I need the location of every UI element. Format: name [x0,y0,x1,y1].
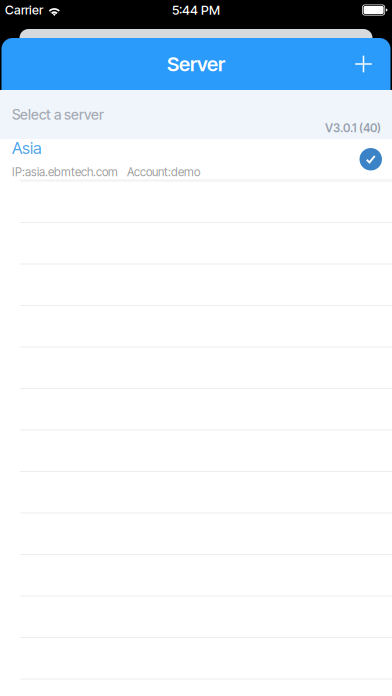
staticText: IP:asia.ebmtech.com Account:demo [12,165,200,179]
staticText: V3.0.1 (40) [325,121,381,135]
button[interactable]: Add server [340,41,386,87]
staticText: Asia [12,138,42,158]
staticText: Carrier [5,2,43,18]
staticText: Select a server [12,106,104,123]
staticText: Server [167,52,225,76]
button[interactable]: Asia [0,139,392,179]
staticText: 5:44 PM [172,2,220,18]
